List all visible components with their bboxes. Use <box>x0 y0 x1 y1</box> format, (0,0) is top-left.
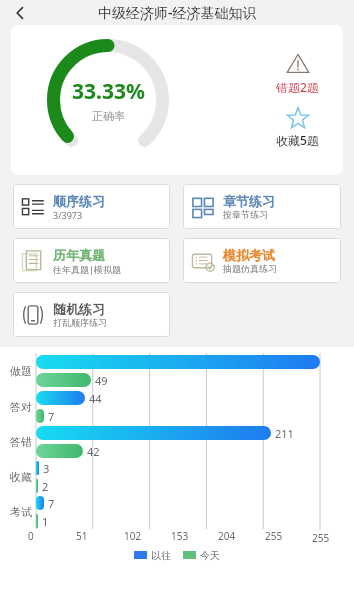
staticText: 考试 <box>0 505 32 519</box>
staticText: 抽题仿真练习 <box>223 263 277 274</box>
staticText: 收藏5题 <box>276 132 319 148</box>
staticText: 51 <box>76 529 88 543</box>
button[interactable]: 历年真题 <box>13 238 170 283</box>
staticText: 7 <box>48 496 55 510</box>
staticText: 正确率 <box>92 109 125 123</box>
button[interactable]: 错题2题 <box>276 52 319 95</box>
staticText: 按章节练习 <box>223 209 268 220</box>
staticText: 3/3973 <box>53 209 83 221</box>
staticText: 答对 <box>0 400 32 414</box>
staticText: 42 <box>87 444 100 458</box>
staticText: 1 <box>42 514 49 528</box>
button[interactable]: 随机练习 <box>13 292 170 337</box>
button[interactable]: Back <box>6 0 34 25</box>
staticText: 模拟考试 <box>223 247 275 263</box>
staticText: 49 <box>95 373 108 387</box>
button[interactable]: 顺序练习 <box>13 184 170 229</box>
staticText: 255 <box>312 531 330 545</box>
staticText: 3 <box>43 461 50 475</box>
staticText: 答错 <box>0 435 32 449</box>
staticText: 中级经济师-经济基础知识 <box>98 3 257 22</box>
staticText: 204 <box>218 529 236 543</box>
staticText: 153 <box>171 529 189 543</box>
staticText: 44 <box>89 391 102 405</box>
staticText: 章节练习 <box>223 193 275 209</box>
button[interactable]: 模拟考试 <box>183 238 341 283</box>
staticText: 错题2题 <box>276 79 319 95</box>
button[interactable]: 收藏5题 <box>276 106 319 148</box>
staticText: 随机练习 <box>53 301 105 317</box>
staticText: 打乱顺序练习 <box>53 317 107 328</box>
staticText: 7 <box>48 409 55 423</box>
staticText: 0 <box>28 529 34 543</box>
staticText: 33.33% <box>72 77 145 106</box>
staticText: 211 <box>275 426 294 440</box>
staticText: 255 <box>265 529 283 543</box>
staticText: 做题 <box>0 364 32 378</box>
staticText: 顺序练习 <box>53 193 105 209</box>
staticText: 102 <box>124 529 142 543</box>
staticText: 今天 <box>200 549 220 562</box>
button[interactable]: 章节练习 <box>183 184 341 229</box>
staticText: 往年真题|模拟题 <box>53 263 121 275</box>
staticText: 历年真题 <box>53 247 105 263</box>
staticText: 以往 <box>151 549 171 562</box>
staticText: 2 <box>42 479 49 493</box>
staticText: 收藏 <box>0 470 32 484</box>
